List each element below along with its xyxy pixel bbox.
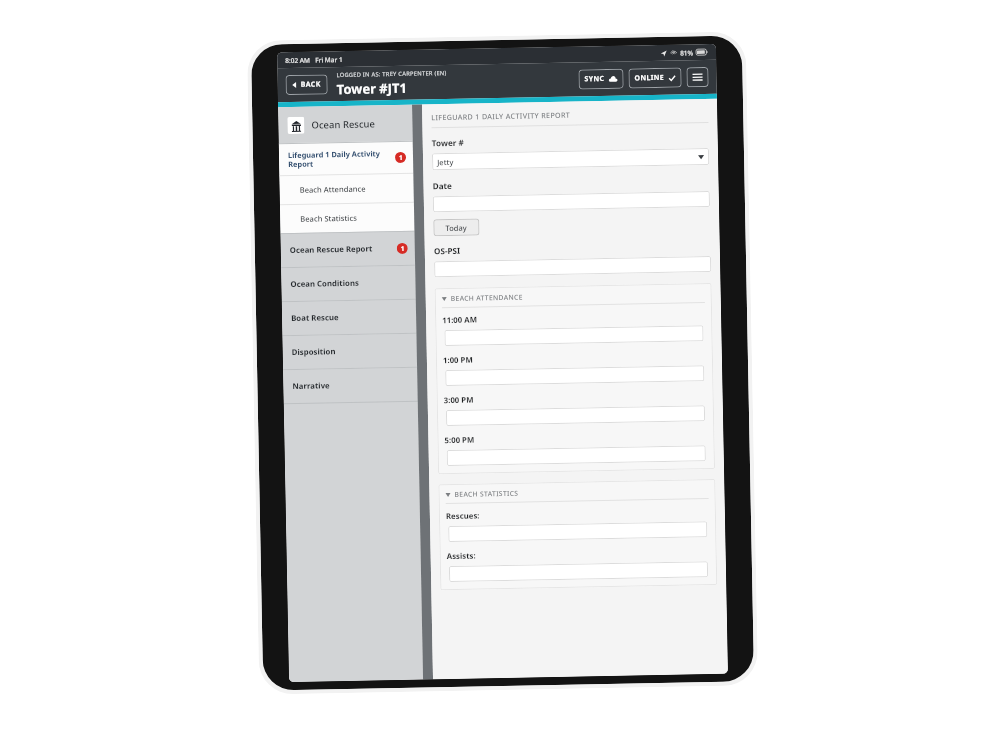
button[interactable] [433,191,710,212]
staticText: Beach Statistics [300,213,357,224]
button[interactable]: Boat Rescue [282,300,416,335]
button[interactable]: BACK [285,74,328,95]
staticText: Assists: [447,551,476,562]
staticText: Ocean Conditions [290,277,408,290]
staticText: 5:00 PM [444,435,475,446]
button[interactable]: Narrative [283,368,418,403]
button[interactable]: Online status [628,67,682,88]
staticText: LIFEGUARD 1 DAILY ACTIVITY REPORT [431,110,570,122]
staticText: Lifeguard 1 Daily Activity Report [288,148,395,169]
staticText: Date [432,180,453,191]
staticText: 1:00 PM [443,355,473,366]
staticText: 3:00 PM [444,395,474,406]
staticText: Jetty [437,157,454,167]
button[interactable]: Jetty [432,148,709,170]
staticText: 8:02 AM [285,56,310,65]
staticText: Narrative [292,379,410,392]
staticText: Fri Mar 1 [315,55,343,64]
button[interactable]: Ocean Conditions [281,266,416,301]
staticText: 81% [680,48,693,57]
button[interactable]: Lifeguard 1 Daily Activity Report [279,142,413,175]
staticText: Disposition [292,345,410,358]
staticText: 1 [399,153,403,162]
staticText: BACK [300,79,322,90]
staticText: OS-PSI [434,245,461,256]
button[interactable]: Sync [578,69,624,89]
staticText: Tower # [432,137,465,148]
button[interactable]: Ocean Rescue [278,105,413,143]
button[interactable] [448,521,707,542]
button[interactable]: Menu [686,67,709,87]
button[interactable] [446,405,705,426]
button[interactable] [445,365,704,386]
button[interactable]: Beach Attendance [279,174,414,204]
button[interactable] [447,445,706,466]
staticText: Ocean Rescue [311,117,375,132]
button[interactable]: BEACH ATTENDANCE [442,289,705,303]
button[interactable]: BEACH STATISTICS [445,485,708,499]
staticText: BEACH STATISTICS [454,489,519,499]
button[interactable]: Today [433,218,479,236]
staticText: BEACH ATTENDANCE [451,293,523,303]
staticText: 1 [401,244,405,253]
button[interactable]: Disposition [282,334,417,369]
button[interactable]: Beach Statistics [280,203,414,233]
staticText: Beach Attendance [299,184,366,195]
staticText: 11:00 AM [442,314,477,326]
staticText: LOGGED IN AS: TREY CARPENTER (EN) [336,69,447,79]
staticText: Tower #JT1 [336,79,408,98]
button[interactable] [444,325,704,346]
staticText: Boat Rescue [291,311,409,324]
staticText: ONLINE [634,73,665,83]
staticText: SYNC [584,74,605,84]
button[interactable] [449,561,708,582]
staticText: Rescues: [446,510,480,522]
button[interactable]: Ocean Rescue Report [280,232,415,267]
staticText: Today [445,223,467,233]
button[interactable] [434,256,711,277]
staticText: Ocean Rescue Report [290,243,397,256]
